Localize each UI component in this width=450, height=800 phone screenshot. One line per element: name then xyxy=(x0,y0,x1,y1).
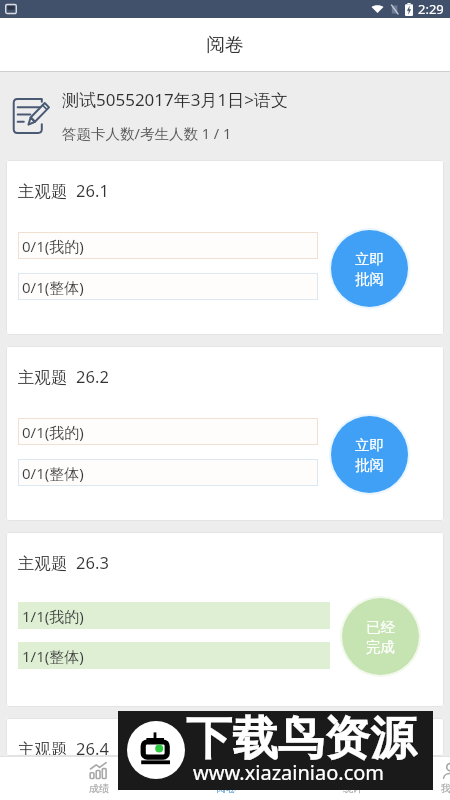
button[interactable]: 主观题 26.3 xyxy=(6,532,444,707)
button[interactable]: 主观题 26.4 xyxy=(6,718,444,756)
staticText: 0/1(我的) xyxy=(22,422,84,442)
staticText: 立即 批阅 xyxy=(355,250,384,288)
button[interactable]: 立即 批阅 xyxy=(331,230,408,307)
staticText: 下载鸟资源 xyxy=(186,710,416,768)
staticText: 我的 xyxy=(441,782,450,795)
button[interactable]: 成绩 xyxy=(35,756,162,800)
staticText: www.xiazainiao.com xyxy=(193,759,385,786)
button[interactable]: 统计 xyxy=(289,756,416,800)
staticText: 0/1(整体) xyxy=(22,277,84,297)
button[interactable]: 主观题 26.2 xyxy=(6,346,444,521)
staticText: 测试50552017年3月1日>语文 xyxy=(62,88,288,111)
button[interactable]: 立即 批阅 xyxy=(331,416,408,493)
button[interactable]: 我的 xyxy=(416,756,450,800)
staticText: 阅卷 xyxy=(206,33,244,57)
staticText: 1/1(我的) xyxy=(22,606,84,626)
staticText: 主观题 26.2 xyxy=(18,365,109,388)
staticText: 统计 xyxy=(343,782,363,795)
button[interactable]: 阅卷 xyxy=(162,756,289,800)
staticText: 成绩 xyxy=(89,782,109,795)
staticText: 0/1(整体) xyxy=(22,463,84,483)
staticText: 主观题 26.4 xyxy=(18,737,109,756)
staticText: 主观题 26.1 xyxy=(18,179,109,202)
staticText: 2:29 xyxy=(418,0,444,18)
staticText: 主观题 26.3 xyxy=(18,551,109,574)
staticText: 0/1(我的) xyxy=(22,236,84,256)
staticText: 答题卡人数/考生人数 1 / 1 xyxy=(62,123,232,143)
staticText: 立即 批阅 xyxy=(355,436,384,474)
button[interactable]: 主观题 26.1 xyxy=(6,160,444,335)
staticText: 1/1(整体) xyxy=(22,646,84,666)
staticText: 阅卷 xyxy=(216,782,236,795)
staticText: 已经 完成 xyxy=(366,618,395,656)
button[interactable]: 已经 完成 xyxy=(342,598,419,675)
